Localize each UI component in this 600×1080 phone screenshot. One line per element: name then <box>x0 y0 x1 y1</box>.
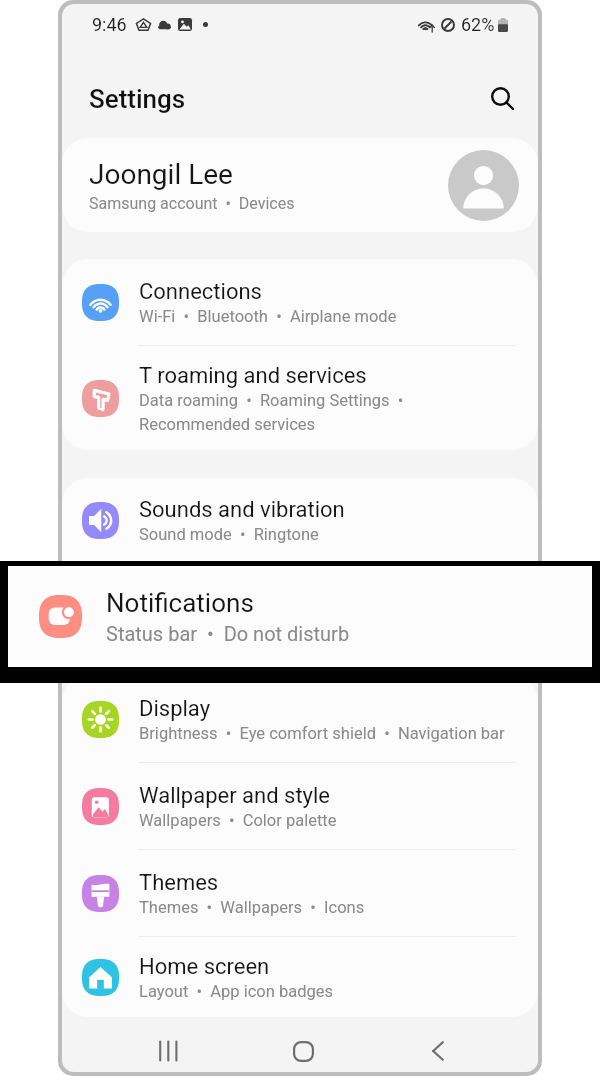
staticText: Settings <box>89 84 186 114</box>
other: Wallpaper and style <box>82 788 119 825</box>
staticText: Wi-Fi • Bluetooth • Airplane mode <box>139 307 397 326</box>
button[interactable]: Sounds and vibration <box>62 478 538 562</box>
button[interactable]: Home <box>277 1025 329 1072</box>
button[interactable]: Connections <box>62 259 538 345</box>
button[interactable]: Back <box>412 1025 464 1072</box>
button[interactable]: Recents <box>142 1025 194 1072</box>
staticText: Home screen <box>139 954 270 980</box>
staticText: Display <box>139 696 211 722</box>
staticText: Status bar • Do not disturb <box>139 610 340 629</box>
staticText: Notifications <box>139 582 265 608</box>
staticText: Joongil Lee <box>89 158 233 191</box>
staticText: 9:46 <box>92 14 127 35</box>
button[interactable]: Themes <box>62 850 538 936</box>
other: Themes <box>82 875 119 912</box>
staticText: Samsung account • Devices <box>89 194 295 213</box>
other: Connections <box>82 284 119 321</box>
staticText: Sounds and vibration <box>139 497 345 523</box>
staticText: Wallpaper and style <box>139 783 331 809</box>
other: Notifications <box>82 587 119 624</box>
staticText: Wallpapers • Color palette <box>139 811 337 830</box>
staticText: 62% <box>461 14 495 35</box>
staticText: Layout • App icon badges <box>139 982 333 1001</box>
button[interactable]: Joongil Lee <box>62 138 538 232</box>
staticText: Themes • Wallpapers • Icons <box>139 898 365 917</box>
button[interactable]: Search <box>479 75 527 123</box>
button[interactable]: Display <box>62 676 538 762</box>
staticText: Notifications <box>106 588 254 618</box>
staticText: Status bar • Do not disturb <box>106 622 350 645</box>
other: Display <box>82 701 119 738</box>
staticText: T roaming and services <box>139 363 367 389</box>
other: Sounds and vibration <box>82 502 119 539</box>
button[interactable]: Wallpaper and style <box>62 763 538 849</box>
button[interactable]: T roaming and services <box>62 346 538 450</box>
staticText: Themes <box>139 870 219 896</box>
button[interactable]: Notifications <box>8 566 592 667</box>
staticText: Sound mode • Ringtone <box>139 525 319 544</box>
other: T roaming and services <box>82 380 119 417</box>
other: Home screen <box>82 959 119 996</box>
other: Notifications <box>39 595 82 638</box>
staticText: Brightness • Eye comfort shield • Naviga… <box>139 724 505 743</box>
staticText: Connections <box>139 279 262 305</box>
button[interactable]: Notifications <box>62 563 538 648</box>
button[interactable]: Home screen <box>62 937 538 1017</box>
staticText: Data roaming • Roaming Settings • Recomm… <box>139 391 404 434</box>
